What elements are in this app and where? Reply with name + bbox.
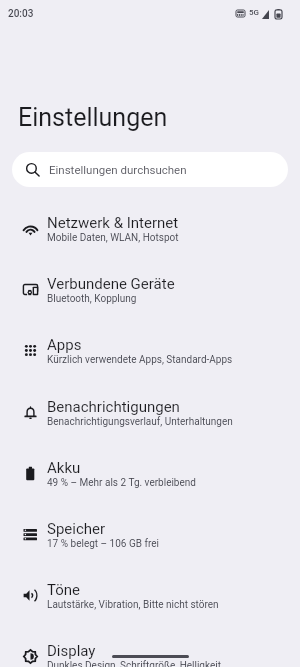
staticText: Speicher	[47, 520, 106, 538]
button[interactable]: Akku	[0, 442, 300, 503]
staticText: Verbundene Geräte	[47, 275, 175, 293]
staticText: Display	[47, 642, 96, 660]
button[interactable]: Benachrichtigungen	[0, 381, 300, 442]
button[interactable]: Netzwerk & Internet	[0, 197, 300, 258]
staticText: Einstellungen	[18, 103, 168, 132]
staticText: Apps	[47, 336, 82, 354]
staticText: 20:03	[8, 8, 34, 20]
staticText: Töne	[47, 581, 81, 599]
button[interactable]: Display	[0, 625, 300, 667]
staticText: Mobile Daten, WLAN, Hotspot	[47, 232, 179, 244]
button[interactable]: Apps	[0, 319, 300, 380]
staticText: Dunkles Design, Schriftgröße, Helligkeit	[47, 660, 221, 667]
staticText: Netzwerk & Internet	[47, 214, 179, 232]
button[interactable]: Speicher	[0, 503, 300, 564]
staticText: Benachrichtigungen	[47, 398, 180, 416]
staticText: 49 % – Mehr als 2 Tg. verbleibend	[47, 477, 196, 489]
staticText: Bluetooth, Kopplung	[47, 293, 137, 305]
staticText: Einstellungen durchsuchen	[49, 163, 187, 176]
button[interactable]: Einstellungen durchsuchen	[12, 152, 288, 187]
staticText: Lautstärke, Vibration, Bitte nicht störe…	[47, 599, 219, 611]
staticText: 17 % belegt – 106 GB frei	[47, 538, 159, 550]
button[interactable]: Verbundene Geräte	[0, 258, 300, 319]
staticText: Benachrichtigungsverlauf, Unterhaltungen	[47, 416, 233, 428]
button[interactable]: Töne	[0, 564, 300, 625]
staticText: 5G	[249, 8, 259, 17]
staticText: Akku	[47, 459, 81, 477]
staticText: Kürzlich verwendete Apps, Standard-Apps	[47, 354, 233, 366]
